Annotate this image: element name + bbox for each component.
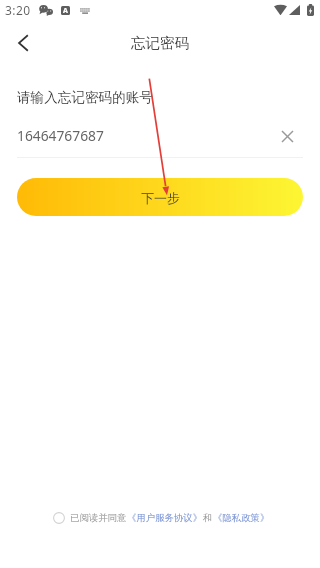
button[interactable]: 16464767687 [17, 122, 269, 150]
button[interactable]: Back [4, 24, 42, 62]
staticText: 已阅读并同意 [70, 512, 127, 524]
staticText: 和 [203, 512, 213, 524]
staticText: 忘记密码 [131, 34, 189, 52]
staticText: 下一步 [141, 190, 180, 206]
button[interactable]: Clear text [277, 126, 298, 147]
staticText: 《隐私政策》 [213, 512, 270, 524]
staticText: 16464767687 [17, 126, 104, 145]
button[interactable]: 下一步 [17, 178, 303, 216]
staticText: 请输入忘记密码的账号 [17, 89, 153, 106]
staticText: 3:20 [5, 2, 31, 18]
staticText: 《用户服务协议》 [127, 512, 203, 524]
button[interactable]: 已阅读并同意 [0, 508, 320, 528]
staticText: A [63, 6, 68, 15]
